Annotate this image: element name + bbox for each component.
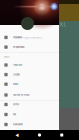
button[interactable]: Připomenutí [0, 42, 59, 52]
staticText: Sdílené se mnou [13, 94, 29, 96]
button[interactable]: Osobní [0, 70, 59, 79]
staticText: XL [59, 21, 66, 27]
staticText: Práce [13, 83, 18, 85]
staticText: Inspirace [13, 64, 22, 66]
button[interactable]: Nastavení [0, 120, 59, 129]
button[interactable]: Recents [57, 130, 67, 140]
staticText: ◀ [15, 133, 19, 137]
button[interactable]: Inspirace [0, 60, 59, 70]
staticText: Osobní [13, 73, 20, 76]
button[interactable]: Sdílené se mnou [0, 90, 59, 100]
staticText: MÍSTA [4, 56, 9, 58]
button[interactable]: Home [34, 130, 44, 140]
staticText: Požadavky [13, 36, 22, 39]
button[interactable]: Back [12, 130, 22, 140]
button[interactable]: Koš [0, 110, 59, 119]
staticText: Koš [13, 113, 16, 116]
staticText: Nastavení [13, 123, 23, 126]
button[interactable]: Archiv [0, 100, 59, 109]
staticText: Archiv [13, 103, 19, 106]
staticText: info@michalskop.cz [22, 36, 42, 39]
staticText: Připomenutí [13, 46, 25, 48]
button[interactable]: Práce [0, 79, 59, 89]
button[interactable]: Požadavky [0, 33, 59, 42]
